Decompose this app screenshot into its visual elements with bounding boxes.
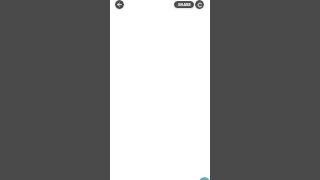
button[interactable]: Back	[115, 0, 124, 9]
button[interactable]: SHARE	[174, 1, 194, 8]
staticText: SHARE	[178, 2, 191, 7]
button[interactable]: Refresh	[195, 0, 204, 9]
button[interactable]: Add	[199, 177, 210, 180]
